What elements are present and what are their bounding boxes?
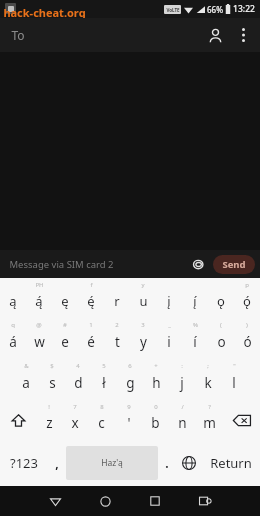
staticText: & — [24, 362, 29, 370]
button[interactable]: + — [143, 359, 169, 400]
button[interactable]: į́ — [182, 278, 208, 318]
staticText: ą — [9, 292, 17, 310]
staticText: _ — [168, 321, 171, 329]
button[interactable]: Shift — [0, 400, 36, 440]
button[interactable]: ? — [196, 400, 223, 440]
button[interactable]: ! — [36, 400, 62, 440]
staticText: / — [181, 403, 184, 411]
button[interactable]: Back — [30, 486, 80, 516]
staticText: q — [11, 321, 15, 329]
staticText: n — [178, 414, 187, 432]
button[interactable]: _ — [156, 318, 182, 359]
button[interactable]: 0 — [142, 400, 169, 440]
button[interactable]: p — [234, 278, 260, 318]
button[interactable]: 9 — [115, 400, 142, 440]
button[interactable]: ( — [208, 318, 234, 359]
button[interactable]: More options — [230, 22, 256, 48]
button[interactable]: ą — [0, 278, 26, 318]
staticText: 0 — [154, 403, 158, 411]
staticText: é — [87, 333, 95, 351]
button[interactable]: 2 — [104, 318, 130, 359]
button[interactable]: 5 — [91, 359, 117, 400]
button[interactable]: Add recipient — [200, 20, 230, 50]
staticText: j — [180, 374, 184, 392]
staticText: VoLTE — [166, 7, 180, 13]
button[interactable]: f — [78, 278, 104, 318]
staticText: 8 — [100, 403, 104, 411]
staticText: x — [71, 414, 79, 432]
staticText: p — [245, 281, 249, 289]
staticText: d — [74, 374, 83, 392]
button[interactable]: Send — [213, 255, 255, 274]
staticText: y — [140, 333, 147, 351]
staticText: : — [181, 362, 183, 370]
staticText: ó — [243, 333, 252, 351]
button[interactable]: Home — [80, 486, 130, 516]
staticText: ǫ́ — [243, 292, 251, 310]
staticText: " — [233, 362, 236, 370]
button[interactable]: / — [169, 400, 196, 440]
staticText: ę́ — [87, 292, 95, 310]
staticText: 6 — [128, 362, 132, 370]
button[interactable]: 3 — [130, 318, 156, 359]
button[interactable]: 7 — [62, 400, 88, 440]
staticText: , — [55, 455, 59, 471]
button[interactable]: y — [130, 278, 156, 318]
staticText: Message via SIM card 2 — [9, 258, 114, 271]
staticText: į — [167, 292, 171, 310]
staticText: + — [154, 362, 158, 370]
staticText: u — [139, 292, 148, 310]
staticText: c — [98, 414, 105, 432]
button[interactable]: Change language — [176, 440, 201, 486]
staticText: Return — [210, 454, 252, 472]
button[interactable]: Recents — [130, 486, 180, 516]
staticText: w — [34, 333, 45, 351]
button[interactable]: 6 — [117, 359, 143, 400]
button[interactable]: ?123 — [0, 440, 47, 486]
staticText: i — [167, 333, 171, 351]
staticText: a — [22, 374, 30, 392]
button[interactable]: ) — [234, 318, 260, 359]
staticText: t — [115, 333, 120, 351]
button[interactable]: PH — [26, 278, 52, 318]
staticText: f — [90, 281, 93, 289]
button[interactable]: : — [169, 359, 195, 400]
staticText: # — [63, 321, 67, 329]
staticText: ? — [208, 403, 211, 411]
button[interactable]: ę — [52, 278, 78, 318]
button[interactable]: . — [158, 440, 176, 486]
staticText: ' — [127, 414, 131, 432]
button[interactable]: @ — [26, 318, 52, 359]
button[interactable]: Return — [201, 440, 260, 486]
button[interactable]: ; — [195, 359, 221, 400]
staticText: 9 — [127, 403, 131, 411]
staticText: í — [193, 333, 197, 351]
button[interactable]: & — [13, 359, 39, 400]
button[interactable]: " — [221, 359, 247, 400]
staticText: b — [151, 414, 160, 432]
button[interactable]: Attach — [187, 253, 209, 275]
button[interactable]: Space — [66, 446, 158, 480]
staticText: ( — [220, 321, 222, 329]
button[interactable]: Screenshot — [180, 486, 230, 516]
staticText: ?123 — [10, 454, 38, 472]
staticText: 1 — [89, 321, 93, 329]
staticText: ) — [246, 321, 248, 329]
button[interactable]: q — [0, 318, 26, 359]
button[interactable]: 4 — [65, 359, 91, 400]
button[interactable]: ǫ — [208, 278, 234, 318]
staticText: z — [46, 414, 53, 432]
button[interactable]: , — [47, 440, 66, 486]
button[interactable]: 1 — [78, 318, 104, 359]
button[interactable]: $ — [39, 359, 65, 400]
staticText: @ — [36, 321, 42, 329]
staticText: 4 — [76, 362, 80, 370]
button[interactable]: # — [52, 318, 78, 359]
staticText: į́ — [193, 292, 197, 310]
button[interactable]: į — [156, 278, 182, 318]
staticText: r — [114, 292, 120, 310]
button[interactable]: % — [182, 318, 208, 359]
button[interactable]: 8 — [88, 400, 115, 440]
button[interactable]: Backspace — [223, 400, 260, 440]
button[interactable]: r — [104, 278, 130, 318]
